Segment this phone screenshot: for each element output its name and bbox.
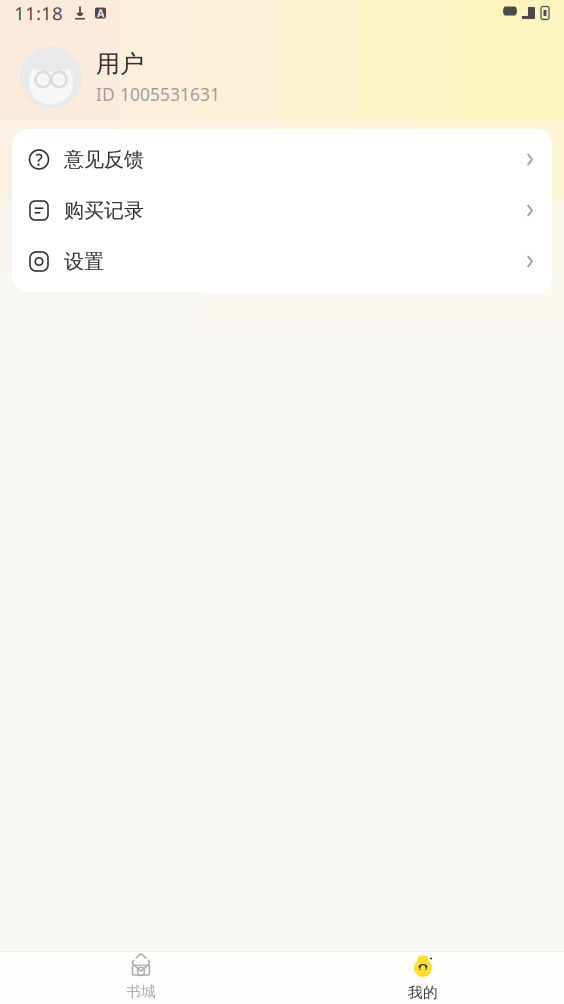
- button[interactable]: 购买记录: [12, 185, 552, 236]
- staticText: 设置: [64, 249, 104, 274]
- staticText: 我的: [408, 983, 438, 1001]
- button[interactable]: 设置: [12, 236, 552, 287]
- staticText: 意见反馈: [64, 147, 144, 172]
- staticText: 购买记录: [64, 198, 144, 223]
- staticText: ID 1005531631: [96, 83, 220, 106]
- staticText: 用户: [96, 49, 144, 79]
- staticText: 11:18: [14, 1, 63, 25]
- staticText: 书城: [126, 982, 156, 1000]
- button[interactable]: 书城: [81, 952, 201, 1003]
- staticText: ?: [35, 149, 42, 170]
- button[interactable]: 我的: [363, 952, 483, 1003]
- button[interactable]: 用户: [0, 26, 564, 129]
- button[interactable]: ?: [12, 134, 552, 185]
- staticText: A: [97, 6, 104, 20]
